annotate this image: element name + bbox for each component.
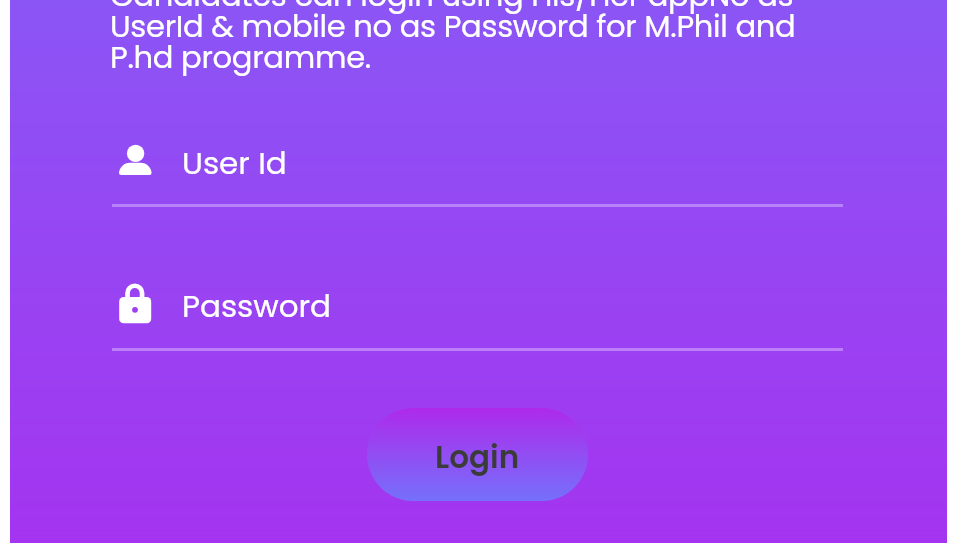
button[interactable]: Login — [367, 408, 588, 501]
staticText: Candidates can login using His/Her appNo… — [110, 0, 855, 79]
other: Password — [119, 281, 152, 323]
staticText: Login — [435, 435, 520, 478]
button[interactable] — [112, 124, 843, 202]
other: User Id — [119, 140, 152, 182]
button[interactable] — [112, 265, 843, 343]
staticText: User Id — [182, 141, 287, 184]
staticText: Password — [182, 284, 332, 327]
